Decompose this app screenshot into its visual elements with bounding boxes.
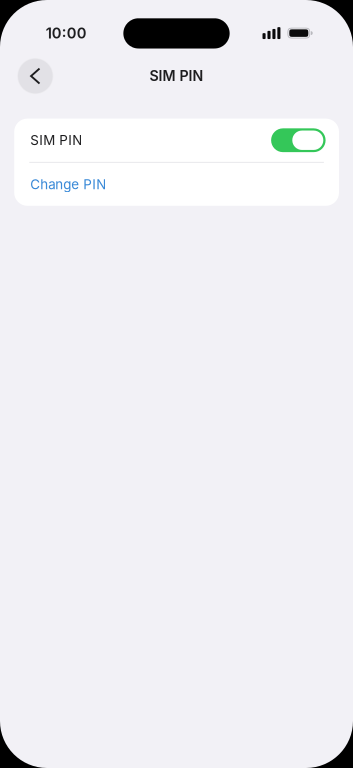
staticText: SIM PIN: [149, 67, 203, 84]
staticText: Change PIN: [30, 176, 106, 192]
staticText: 10:00: [46, 24, 87, 42]
button[interactable]: Change PIN: [14, 163, 339, 206]
button[interactable]: Back: [17, 58, 53, 94]
staticText: SIM PIN: [30, 132, 82, 148]
